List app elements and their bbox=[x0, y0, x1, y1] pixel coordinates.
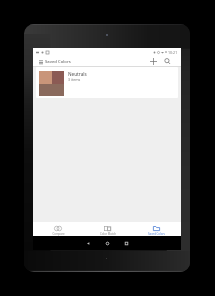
button[interactable]: Compare bbox=[33, 222, 83, 236]
staticText: 3 items bbox=[68, 77, 81, 82]
staticText: Saved Colors bbox=[148, 232, 165, 236]
staticText: Compare bbox=[52, 232, 65, 236]
staticText: Saved Colors bbox=[45, 59, 71, 65]
button[interactable]: Add bbox=[148, 56, 159, 67]
button[interactable]: Recents bbox=[120, 237, 132, 249]
button[interactable]: Neutrals bbox=[36, 67, 178, 98]
button[interactable]: Home bbox=[101, 237, 113, 249]
button[interactable]: Color Match bbox=[83, 222, 132, 236]
button[interactable]: Search bbox=[162, 56, 173, 67]
staticText: Color Match bbox=[100, 232, 116, 236]
button[interactable]: Back bbox=[82, 237, 94, 249]
staticText: 10:21 bbox=[168, 50, 178, 55]
staticText: Neutrals bbox=[68, 71, 87, 77]
button[interactable]: Navigation menu bbox=[37, 58, 44, 65]
button[interactable]: Saved Colors bbox=[132, 222, 181, 236]
